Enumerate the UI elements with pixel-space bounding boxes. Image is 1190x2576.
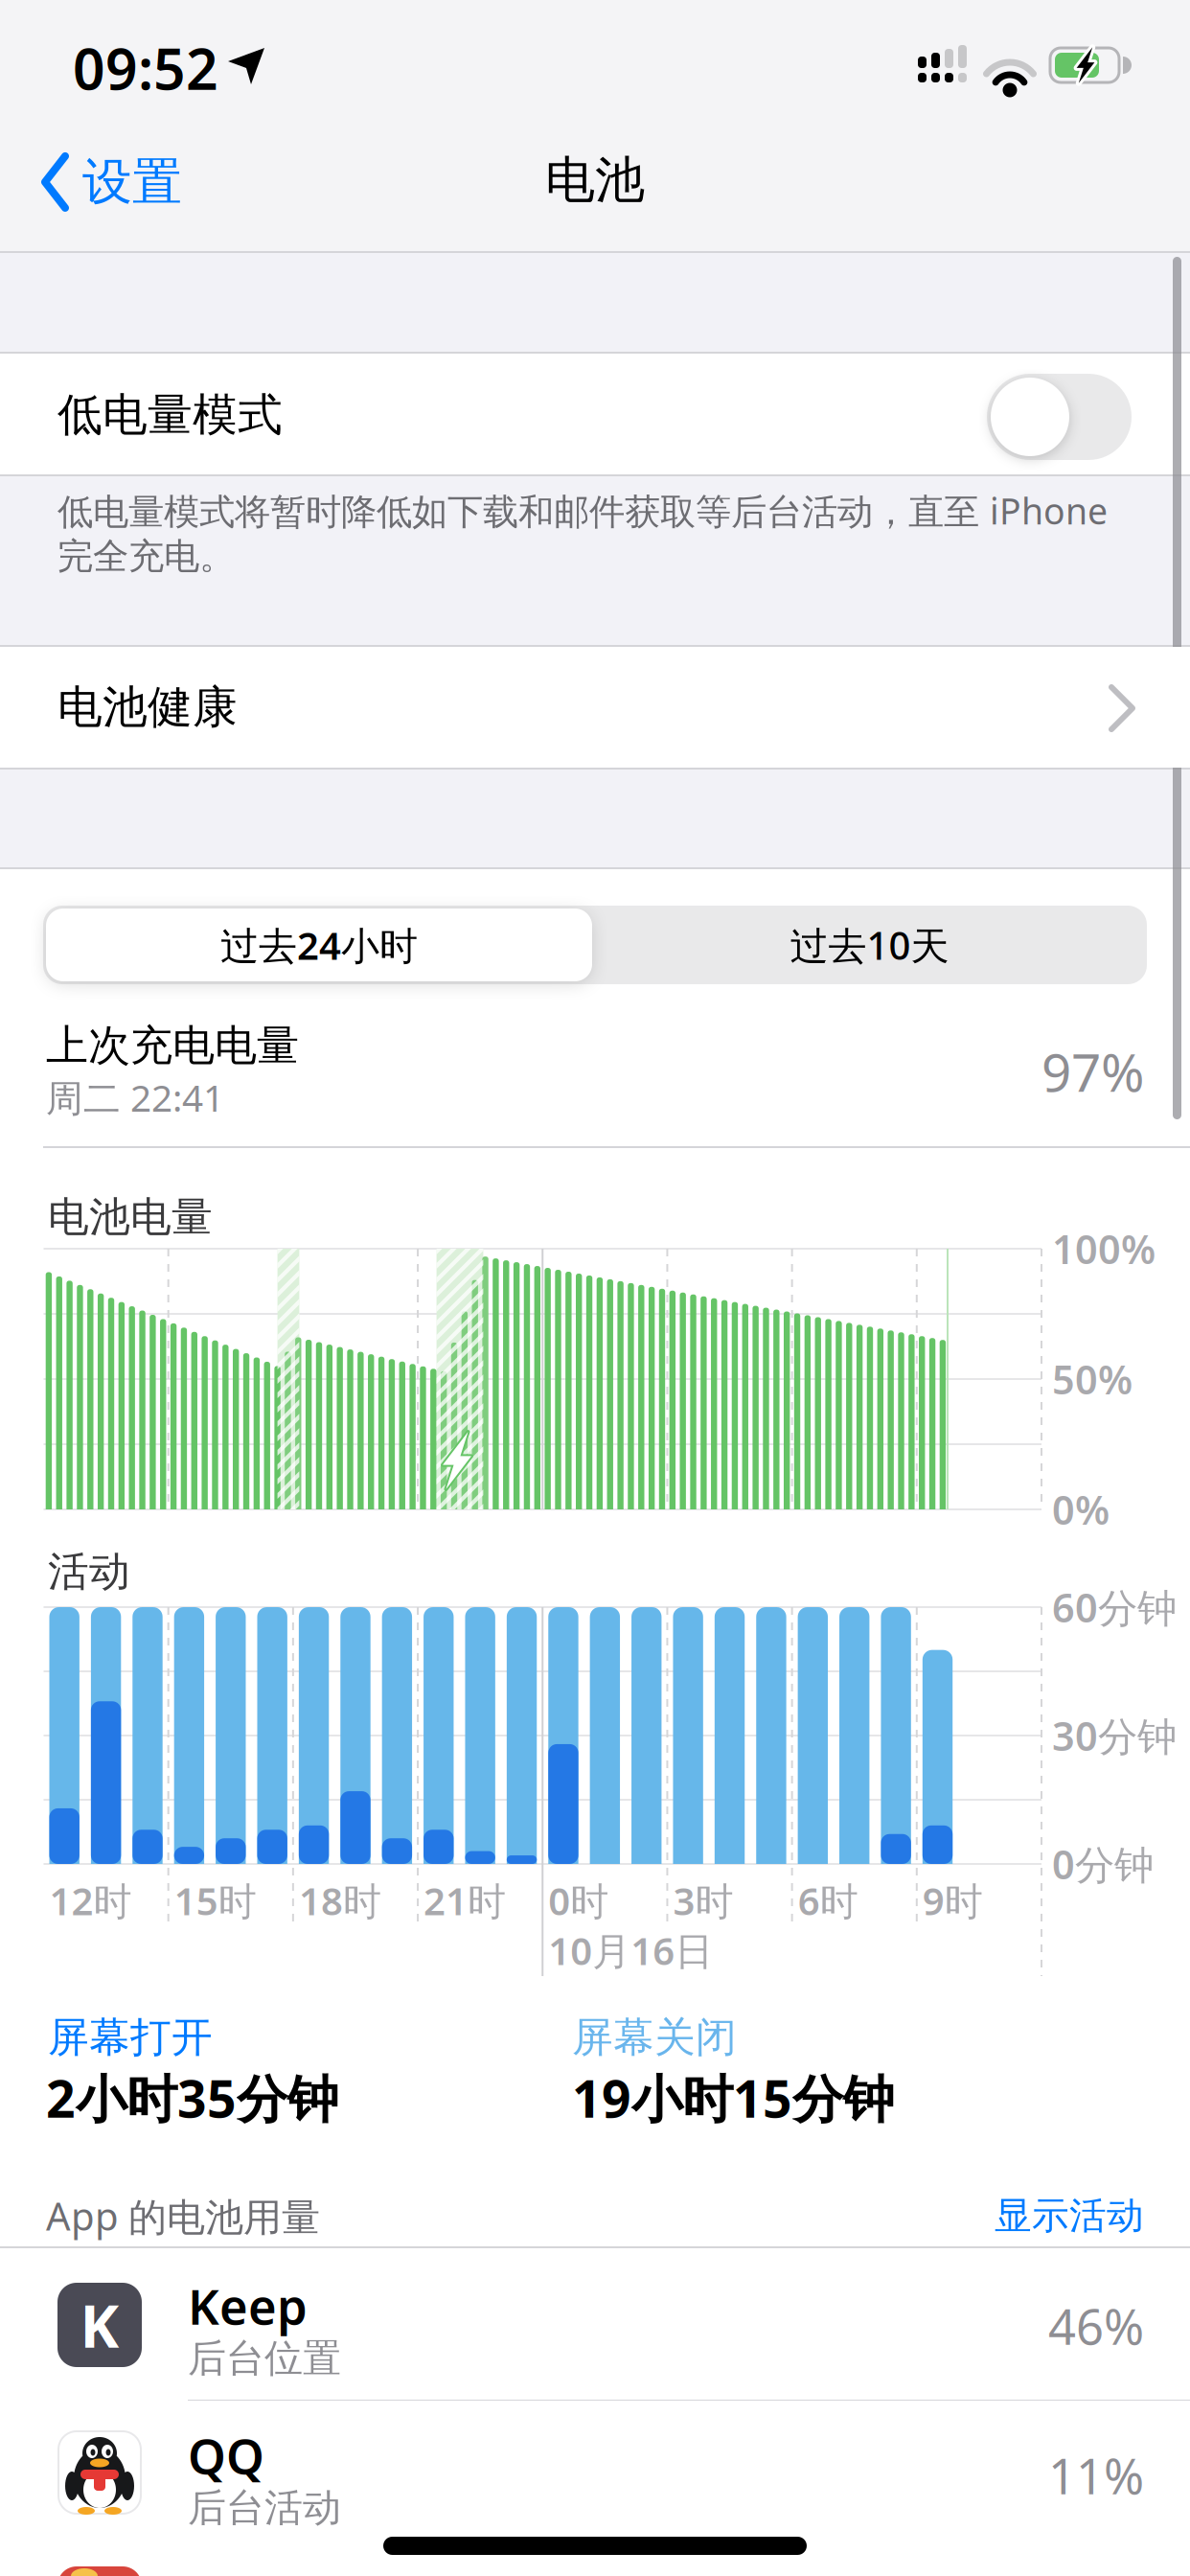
staticText: 过去10天 — [790, 919, 949, 970]
staticText: 屏幕关闭 — [572, 2012, 737, 2063]
staticText: 9时 — [922, 1875, 983, 1926]
staticText: 显示活动 — [995, 2193, 1144, 2238]
staticText: 50% — [1052, 1353, 1133, 1405]
staticText: 09:52 — [73, 31, 218, 105]
staticText: 设置 — [82, 151, 182, 213]
staticText: 活动 — [48, 1547, 130, 1597]
button[interactable]: 电池健康 — [0, 647, 1190, 2576]
staticText: 3时 — [673, 1875, 733, 1926]
staticText: 2小时35分钟 — [46, 2064, 338, 2132]
staticText: QQ — [188, 2423, 264, 2488]
button[interactable]: 显示活动 — [761, 2193, 1144, 2239]
staticText: 0% — [1052, 1483, 1110, 1536]
staticText: 12时 — [49, 1875, 132, 1926]
button[interactable]: 设置 — [40, 151, 182, 213]
staticText: 电池电量 — [48, 1192, 213, 1242]
button[interactable]: QQ — [0, 2402, 1190, 2576]
staticText: 电池健康 — [57, 680, 238, 735]
button[interactable] — [987, 374, 1132, 460]
staticText: 18时 — [299, 1875, 381, 1926]
staticText: 周二 22:41 — [46, 1073, 224, 1122]
staticText: 60分钟 — [1052, 1581, 1177, 1633]
staticText: 30分钟 — [1052, 1709, 1177, 1762]
staticText: 上次充电电量 — [46, 1020, 299, 1071]
button[interactable]: K — [0, 2250, 1190, 2400]
staticText: 11% — [1048, 2443, 1144, 2508]
staticText: Keep — [188, 2274, 308, 2338]
staticText: 过去24小时 — [220, 919, 418, 970]
staticText: App 的电池用量 — [46, 2190, 320, 2241]
staticText: 后台活动 — [188, 2484, 341, 2531]
staticText: 46% — [1048, 2294, 1144, 2358]
staticText: 电池 — [545, 150, 645, 211]
staticText: 97% — [1041, 1037, 1144, 1106]
staticText: 10月16日 — [548, 1925, 713, 1976]
staticText: 0时 — [548, 1875, 609, 1926]
staticText: 21时 — [424, 1875, 506, 1926]
staticText: 低电量模式将暂时降低如下载和邮件获取等后台活动，直至 iPhone 完全充电。 — [57, 487, 1108, 578]
staticText: 6时 — [798, 1875, 858, 1926]
staticText: 15时 — [174, 1875, 256, 1926]
button[interactable]: 过去24小时 — [46, 908, 592, 981]
staticText: 屏幕打开 — [48, 2012, 213, 2063]
staticText: 19小时15分钟 — [572, 2064, 894, 2132]
staticText: 0分钟 — [1052, 1838, 1154, 1890]
staticText: K — [80, 2286, 119, 2364]
staticText: 低电量模式 — [57, 387, 283, 442]
staticText: 100% — [1052, 1222, 1156, 1275]
button[interactable]: 过去10天 — [595, 908, 1144, 981]
staticText: 后台位置 — [188, 2335, 341, 2382]
